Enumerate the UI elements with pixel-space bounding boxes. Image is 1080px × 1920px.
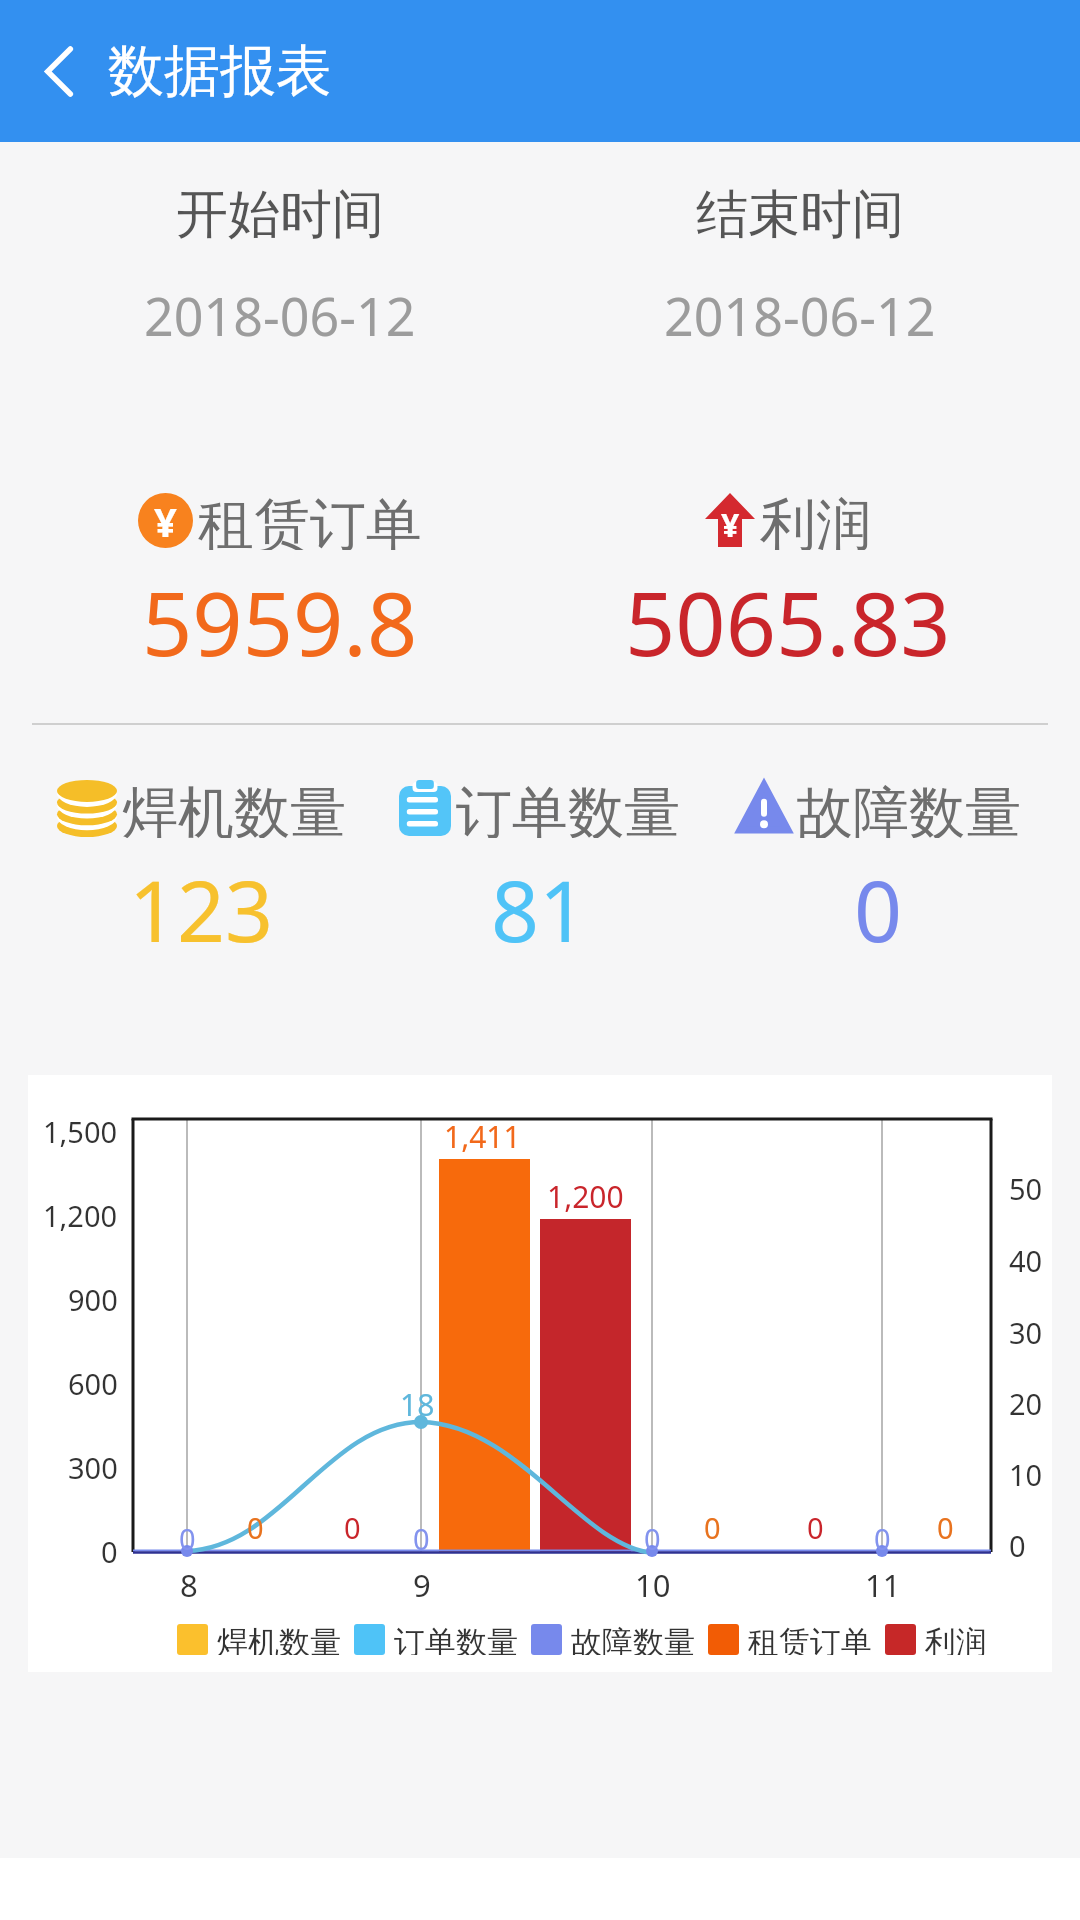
staticText: 9: [413, 1564, 431, 1606]
staticText: 18: [400, 1384, 435, 1425]
staticText: 焊机数量: [122, 778, 346, 838]
staticText: 50: [1009, 1169, 1043, 1208]
staticText: 利润: [760, 490, 872, 550]
button[interactable]: [28, 40, 90, 102]
staticText: 8: [180, 1564, 198, 1606]
staticText: 2018-06-12: [664, 280, 936, 340]
staticText: 1,411: [444, 1116, 521, 1157]
staticText: 0: [1009, 1526, 1026, 1565]
staticText: 10: [1009, 1455, 1043, 1494]
staticText: 0: [413, 1519, 430, 1558]
staticText: 10: [635, 1564, 671, 1606]
staticText: 结束时间: [696, 182, 904, 242]
staticText: 2018-06-12: [144, 280, 416, 340]
staticText: ¥: [721, 503, 740, 547]
staticText: 5959.8: [142, 562, 418, 662]
staticText: ¥: [154, 494, 177, 548]
staticText: 0: [179, 1519, 196, 1558]
button[interactable]: 2018-06-12: [20, 280, 540, 340]
staticText: 0: [874, 1519, 891, 1558]
staticText: 0: [247, 1508, 264, 1547]
staticText: 租赁订单: [748, 1623, 872, 1655]
staticText: 20: [1009, 1384, 1043, 1423]
button[interactable]: 2018-06-12: [540, 280, 1060, 340]
staticText: 数据报表: [108, 36, 332, 107]
staticText: 订单数量: [456, 778, 680, 838]
staticText: 123: [129, 852, 274, 948]
staticText: 0: [644, 1519, 661, 1558]
staticText: 0: [807, 1508, 824, 1547]
staticText: 300: [68, 1448, 118, 1487]
staticText: 0: [854, 852, 903, 948]
staticText: 故障数量: [571, 1623, 695, 1655]
staticText: 1,500: [43, 1112, 118, 1151]
staticText: 0: [101, 1532, 118, 1571]
staticText: 30: [1009, 1313, 1043, 1352]
staticText: 利润: [925, 1623, 987, 1655]
staticText: 81: [491, 852, 588, 948]
staticText: 1,200: [43, 1196, 118, 1235]
staticText: 600: [68, 1364, 118, 1403]
staticText: 5065.83: [625, 562, 951, 662]
staticText: 40: [1009, 1241, 1043, 1280]
staticText: 订单数量: [394, 1623, 518, 1655]
staticText: 故障数量: [797, 778, 1021, 838]
staticText: 租赁订单: [198, 490, 422, 550]
staticText: 0: [344, 1508, 361, 1547]
staticText: 0: [704, 1508, 721, 1547]
staticText: 开始时间: [176, 182, 384, 242]
staticText: 900: [68, 1280, 118, 1319]
staticText: 1,200: [547, 1176, 624, 1217]
staticText: 11: [865, 1564, 901, 1606]
staticText: 0: [937, 1508, 954, 1547]
staticText: 焊机数量: [217, 1623, 341, 1655]
